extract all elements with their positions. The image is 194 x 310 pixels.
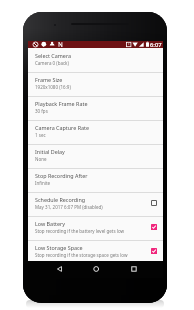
button[interactable]: Frame Size — [28, 72, 163, 97]
staticText: Select Camera — [35, 52, 72, 59]
staticText: Camera Capture Rate — [35, 124, 90, 131]
staticText: Stop recording if the storage space gets… — [35, 252, 128, 258]
button[interactable]: Stop Recording After — [28, 168, 163, 193]
staticText: Low Battery — [35, 220, 66, 227]
button[interactable]: Low Battery — [28, 216, 163, 241]
button[interactable]: Toggle Low Storage Space — [148, 245, 159, 256]
staticText: 30 fps — [35, 108, 48, 114]
button[interactable]: Low Storage Space — [28, 240, 163, 265]
staticText: None — [35, 156, 47, 162]
staticText: 1920x1080 (16:9) — [35, 84, 71, 90]
button[interactable]: Playback Frame Rate — [28, 96, 163, 121]
button[interactable]: Toggle Schedule Recording — [148, 197, 159, 208]
staticText: May 31, 2017 6:07 PM (disabled) — [35, 204, 103, 210]
button[interactable]: Camera Capture Rate — [28, 120, 163, 145]
staticText: 6:07 — [150, 41, 162, 48]
staticText: Stop Recording After — [35, 172, 88, 179]
button[interactable]: Initial Delay — [28, 144, 163, 169]
button[interactable]: Select Camera — [28, 48, 163, 73]
button[interactable]: Schedule Recording — [28, 192, 163, 217]
staticText: Initial Delay — [35, 148, 65, 155]
staticText: Camera 0 (back) — [35, 60, 69, 66]
staticText: Infinite — [35, 180, 51, 186]
staticText: 1 sec — [35, 132, 46, 138]
staticText: Playback Frame Rate — [35, 100, 88, 107]
staticText: Stop recording if the battery level gets… — [35, 228, 125, 234]
button[interactable]: Toggle Low Battery — [148, 221, 159, 232]
staticText: Frame Size — [35, 76, 63, 83]
staticText: Schedule Recording — [35, 196, 86, 203]
staticText: Low Storage Space — [35, 244, 83, 251]
